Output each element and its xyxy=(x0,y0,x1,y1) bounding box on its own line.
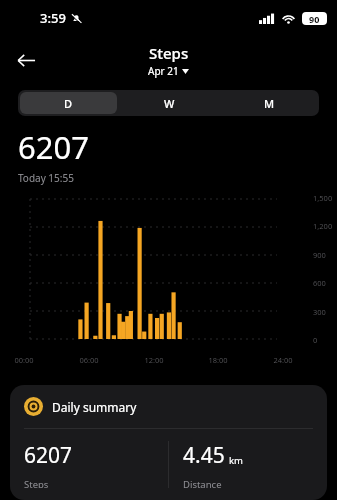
staticText: Daily summary xyxy=(52,399,137,415)
staticText: 1,200 xyxy=(313,221,333,231)
staticText: 24:00 xyxy=(273,355,293,365)
button[interactable]: D xyxy=(20,92,117,114)
staticText: Distance xyxy=(183,478,222,488)
staticText: 4.45 xyxy=(183,441,225,470)
staticText: 90 xyxy=(309,13,320,25)
staticText: D xyxy=(64,96,73,111)
button[interactable]: W xyxy=(121,92,217,114)
staticText: 600 xyxy=(313,278,326,288)
staticText: km xyxy=(229,454,243,467)
staticText: 18:00 xyxy=(208,355,228,365)
staticText: 0 xyxy=(313,335,318,345)
staticText: M xyxy=(264,96,275,111)
staticText: 900 xyxy=(313,250,326,260)
staticText: Apr 21 xyxy=(148,64,179,78)
button[interactable]: Apr 21 xyxy=(148,64,189,78)
staticText: 00:00 xyxy=(14,355,34,365)
button[interactable]: M xyxy=(221,92,317,114)
button[interactable]: Back xyxy=(8,42,44,78)
staticText: Today 15:55 xyxy=(18,171,74,185)
staticText: Steps xyxy=(149,43,189,63)
staticText: 06:00 xyxy=(79,355,99,365)
staticText: 12:00 xyxy=(144,355,164,365)
staticText: 1,500 xyxy=(313,193,333,203)
staticText: 6207 xyxy=(24,441,73,470)
staticText: 6207 xyxy=(18,126,89,168)
staticText: 300 xyxy=(313,307,326,317)
staticText: 3:59 xyxy=(40,9,66,27)
button[interactable]: Daily summary xyxy=(10,385,327,500)
staticText: Steps xyxy=(24,478,49,488)
staticText: W xyxy=(164,96,175,111)
